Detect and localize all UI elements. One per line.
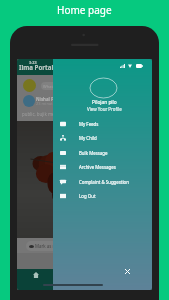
button[interactable]: Bulk Message (53, 145, 152, 160)
staticText: Archive Messages (79, 164, 116, 170)
button[interactable]: Archive Messages (53, 159, 152, 174)
staticText: public, bujik message (22, 111, 67, 117)
button[interactable]: What's on your mind? (41, 82, 91, 90)
button[interactable]: Complaint & Suggestion (53, 174, 152, 189)
staticText: My Feeds (79, 121, 99, 127)
staticText: Nishal Perera (36, 96, 66, 102)
staticText: Home page (57, 3, 112, 17)
button[interactable]: My Feeds (53, 116, 152, 131)
staticText: 23 minutes ago (36, 101, 66, 106)
staticText: Pilojan pilo (92, 99, 117, 106)
button[interactable]: Your profile picture (23, 79, 36, 92)
button[interactable]: View Your Profile (87, 106, 122, 112)
button[interactable]: Home (31, 270, 41, 280)
staticText: Mark as read (35, 243, 62, 249)
staticText: What's on your mind? (41, 84, 84, 89)
button[interactable]: Profile photo (90, 78, 117, 98)
staticText: My Child (79, 135, 97, 141)
staticText: Complaint & Suggestion (79, 179, 129, 185)
button[interactable]: My Child (53, 130, 152, 145)
staticText: Log Out (79, 193, 96, 199)
button[interactable]: Log Out (53, 188, 152, 203)
staticText: Ilma Portal (19, 63, 54, 71)
button[interactable]: Close (123, 267, 132, 276)
button[interactable]: Mark as read (26, 241, 126, 251)
staticText: Bulk Message (79, 150, 108, 156)
staticText: 3:23 (29, 60, 37, 65)
